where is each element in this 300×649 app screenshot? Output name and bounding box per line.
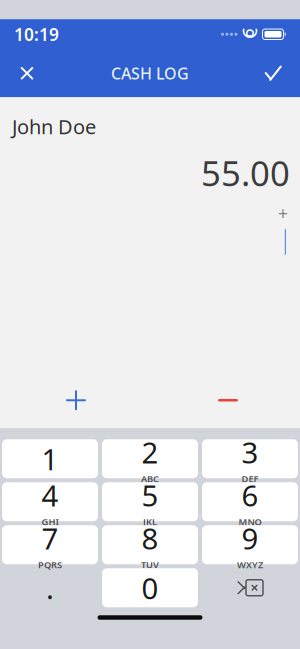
button[interactable]: 4 bbox=[2, 482, 98, 521]
staticText: 2 bbox=[141, 433, 158, 472]
button[interactable]: Close bbox=[0, 49, 54, 97]
staticText: TUV bbox=[141, 558, 159, 571]
staticText: John Doe bbox=[12, 113, 96, 140]
staticText: DEF bbox=[241, 472, 258, 485]
staticText: 0 bbox=[141, 568, 158, 607]
staticText: PQRS bbox=[38, 558, 62, 571]
staticText: + bbox=[278, 202, 288, 225]
staticText: JKL bbox=[143, 515, 157, 528]
staticText: ABC bbox=[141, 472, 159, 485]
staticText: 6 bbox=[241, 476, 258, 515]
button[interactable]: Add bbox=[48, 378, 104, 422]
button[interactable]: Delete bbox=[202, 568, 298, 607]
staticText: 9 bbox=[241, 519, 258, 558]
staticText: 55.00 bbox=[201, 150, 290, 196]
button[interactable]: Decimal point bbox=[2, 568, 98, 607]
button[interactable]: 8 bbox=[102, 525, 198, 564]
button[interactable]: 6 bbox=[202, 482, 298, 521]
button[interactable]: 1 bbox=[2, 439, 98, 478]
staticText: 3 bbox=[241, 433, 258, 472]
staticText: 1 bbox=[41, 439, 58, 478]
staticText: MNO bbox=[238, 515, 261, 528]
button[interactable]: Subtract bbox=[200, 378, 256, 422]
staticText: CASH LOG bbox=[111, 63, 189, 84]
staticText: 10:19 bbox=[14, 23, 59, 46]
staticText: 8 bbox=[141, 519, 158, 558]
button[interactable]: 2 bbox=[102, 439, 198, 478]
staticText: 7 bbox=[41, 519, 58, 558]
button[interactable]: 7 bbox=[2, 525, 98, 564]
staticText: GHI bbox=[41, 515, 58, 528]
staticText: 4 bbox=[41, 476, 58, 515]
staticText: . bbox=[46, 568, 54, 607]
button[interactable]: 3 bbox=[202, 439, 298, 478]
staticText: WXYZ bbox=[237, 558, 263, 571]
button[interactable]: 9 bbox=[202, 525, 298, 564]
staticText: 5 bbox=[141, 476, 158, 515]
button[interactable]: 0 bbox=[102, 568, 198, 607]
button[interactable]: 5 bbox=[102, 482, 198, 521]
button[interactable]: Save bbox=[246, 49, 300, 97]
